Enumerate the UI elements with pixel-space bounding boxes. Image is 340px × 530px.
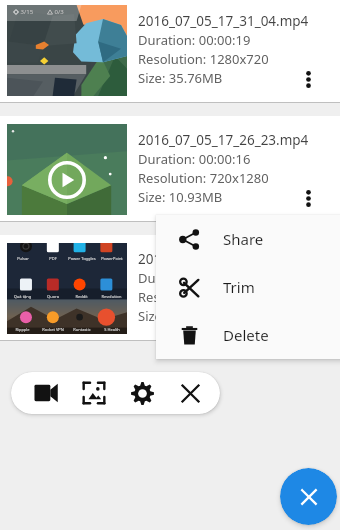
button[interactable]: Share: [156, 215, 340, 263]
staticText: Share: [223, 229, 264, 249]
button[interactable]: 3/15: [0, 0, 340, 103]
staticText: Rocket VPN: [42, 327, 64, 332]
staticText: Size: 20.31MB: [138, 307, 223, 325]
button[interactable]: More options: [295, 63, 321, 95]
staticText: 2016_07_05_17_22_11.mp4: [138, 250, 309, 268]
staticText: 2016_07_05_17_31_04.mp4: [138, 12, 309, 30]
button[interactable]: Trim: [156, 263, 340, 311]
staticText: Resolution: 1280x720: [138, 50, 269, 68]
button[interactable]: More options: [295, 182, 321, 214]
staticText: Reddit: [75, 294, 88, 299]
button[interactable]: Close: [173, 376, 207, 410]
staticText: PDF: [49, 256, 57, 261]
button[interactable]: Close: [280, 468, 337, 525]
staticText: S Health: [104, 327, 120, 332]
button[interactable]: Settings: [125, 376, 159, 410]
staticText: Duration: 00:00:16: [138, 150, 251, 168]
staticText: Power Toggles: [68, 256, 96, 261]
staticText: PowerPoint: [101, 256, 123, 261]
staticText: Delete: [223, 325, 269, 345]
staticText: Pulsar: [17, 256, 29, 261]
staticText: Duration: 00:00:19: [138, 31, 251, 49]
staticText: 2016_07_05_17_26_23.mp4: [138, 131, 309, 149]
staticText: Quà tặng Gala..: [8, 294, 37, 299]
button[interactable]: Screenshot: [77, 376, 111, 410]
staticText: Size: 10.93MB: [138, 188, 223, 206]
button[interactable]: Pulsar: [0, 235, 340, 341]
staticText: Resolution: 1080x1920: [138, 288, 277, 306]
staticText: 3/15: [19, 8, 34, 16]
staticText: Runtastic: [73, 327, 91, 332]
staticText: Resolution: 720x1280: [138, 169, 269, 187]
staticText: Rippple: [15, 327, 30, 332]
staticText: Size: 35.76MB: [138, 69, 223, 87]
staticText: Trim: [223, 277, 255, 297]
staticText: 0/3: [53, 8, 64, 16]
staticText: Duration: 00:00:22: [138, 269, 251, 287]
staticText: Revolution We..: [97, 294, 126, 299]
staticText: Quora: [47, 294, 59, 299]
button[interactable]: Record video: [29, 376, 63, 410]
button[interactable]: Delete: [156, 311, 340, 359]
button[interactable]: 2016_07_05_17_26_23.mp4: [0, 116, 340, 222]
